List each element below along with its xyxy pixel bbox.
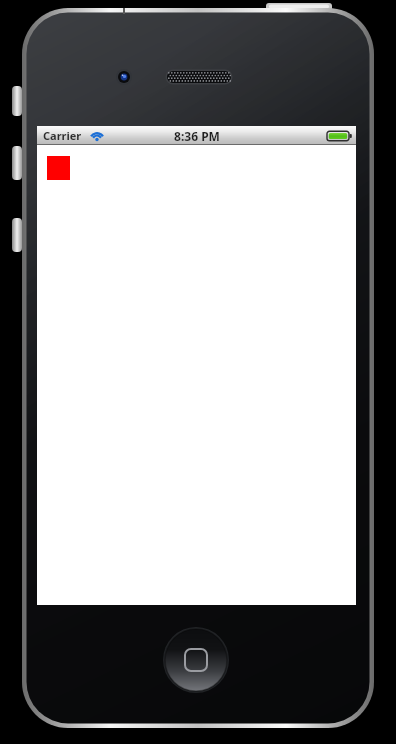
- staticText: 8:36 PM: [174, 128, 220, 144]
- staticText: Carrier: [43, 128, 82, 143]
